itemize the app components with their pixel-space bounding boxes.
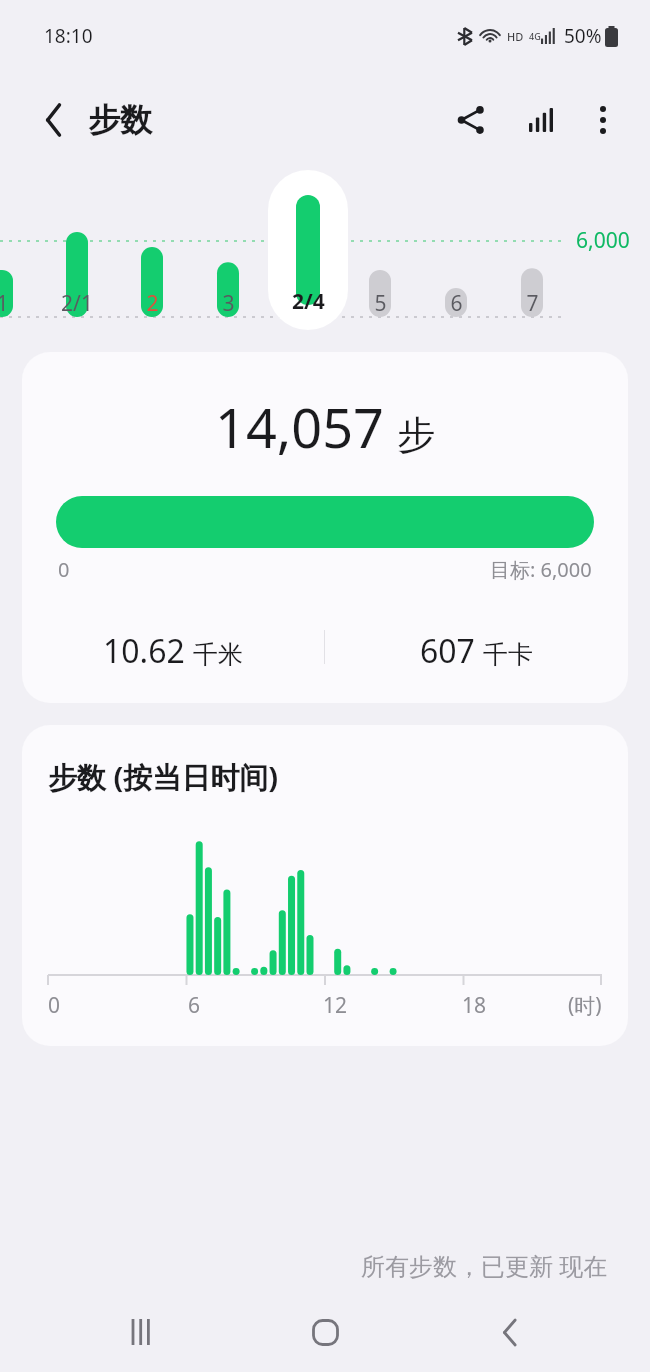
button[interactable]: 14,057	[22, 352, 628, 703]
staticText: 50%	[564, 23, 602, 49]
staticText: (时)	[568, 991, 602, 1020]
staticText: 步数 (按当日时间)	[48, 757, 279, 797]
button[interactable]: 607	[325, 621, 628, 673]
staticText: 0	[48, 991, 61, 1020]
staticText: 2	[146, 289, 159, 318]
button[interactable]: Recents	[112, 1303, 170, 1361]
button[interactable]: 2/4	[268, 170, 348, 330]
staticText: 607	[420, 629, 475, 673]
staticText: 千米	[193, 639, 243, 670]
staticText: 步	[397, 411, 435, 459]
staticText: 目标: 6,000	[490, 556, 592, 583]
staticText: 1	[0, 289, 9, 318]
button[interactable]: 步数 (按当日时间)	[22, 725, 628, 1046]
staticText: 2/1	[61, 289, 93, 318]
staticText: 0	[58, 556, 70, 583]
staticText: 4G	[529, 30, 541, 42]
staticText: 12	[323, 991, 348, 1020]
staticText: 6,000	[576, 226, 630, 255]
staticText: 18	[462, 991, 487, 1020]
button[interactable]: More options	[576, 93, 630, 147]
staticText: HD	[507, 29, 524, 44]
staticText: 18:10	[44, 23, 93, 49]
staticText: 6	[450, 289, 463, 318]
staticText: 3	[222, 289, 235, 318]
staticText: 6	[188, 991, 201, 1020]
button[interactable]: Back	[480, 1303, 538, 1361]
staticText: 2/4	[292, 287, 325, 316]
staticText: 千卡	[483, 639, 533, 670]
staticText: 所有步数，已更新 现在	[361, 1249, 608, 1282]
staticText: 14,057	[215, 390, 384, 464]
staticText: 5	[374, 289, 387, 318]
button[interactable]: Share	[444, 93, 498, 147]
button[interactable]: 10.62	[22, 621, 324, 673]
staticText: 10.62	[103, 629, 185, 673]
staticText: 7	[526, 289, 539, 318]
button[interactable]: Back	[28, 94, 80, 146]
button[interactable]: Chart view	[514, 93, 568, 147]
button[interactable]: Home	[296, 1303, 354, 1361]
staticText: 步数	[88, 100, 152, 140]
